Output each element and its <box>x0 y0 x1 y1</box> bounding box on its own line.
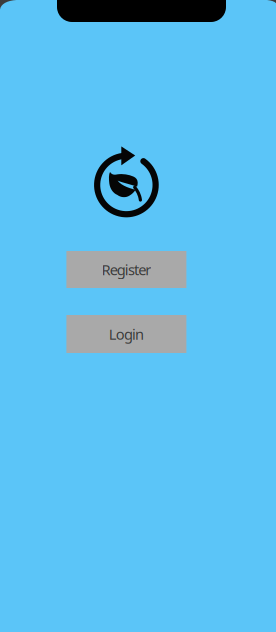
staticText: Register <box>102 260 151 279</box>
button[interactable]: Login <box>66 315 186 353</box>
staticText: Login <box>109 324 144 344</box>
button[interactable]: Register <box>66 251 186 288</box>
